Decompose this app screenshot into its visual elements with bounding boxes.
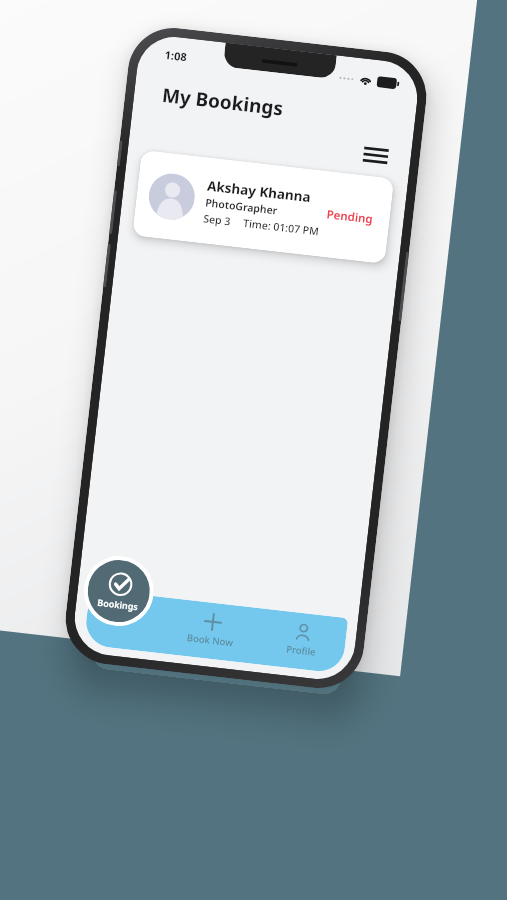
staticText: PhotoGrapher (205, 195, 279, 218)
button[interactable]: Akshay Khanna (132, 150, 394, 264)
staticText: Time: 01:07 PM (242, 216, 320, 238)
staticText: My Bookings (161, 82, 285, 121)
staticText: Bookings (97, 596, 139, 612)
button[interactable]: Bookings (84, 557, 153, 625)
button[interactable]: Menu (357, 137, 395, 174)
staticText: Sep 3 (203, 211, 232, 228)
button[interactable]: Profile (255, 608, 348, 674)
staticText: Profile (286, 642, 317, 659)
staticText: 1:08 (164, 47, 188, 64)
button[interactable]: Book Now (161, 598, 262, 664)
staticText: Pending (326, 206, 374, 227)
staticText: Book Now (186, 631, 234, 649)
staticText: Akshay Khanna (206, 177, 313, 206)
